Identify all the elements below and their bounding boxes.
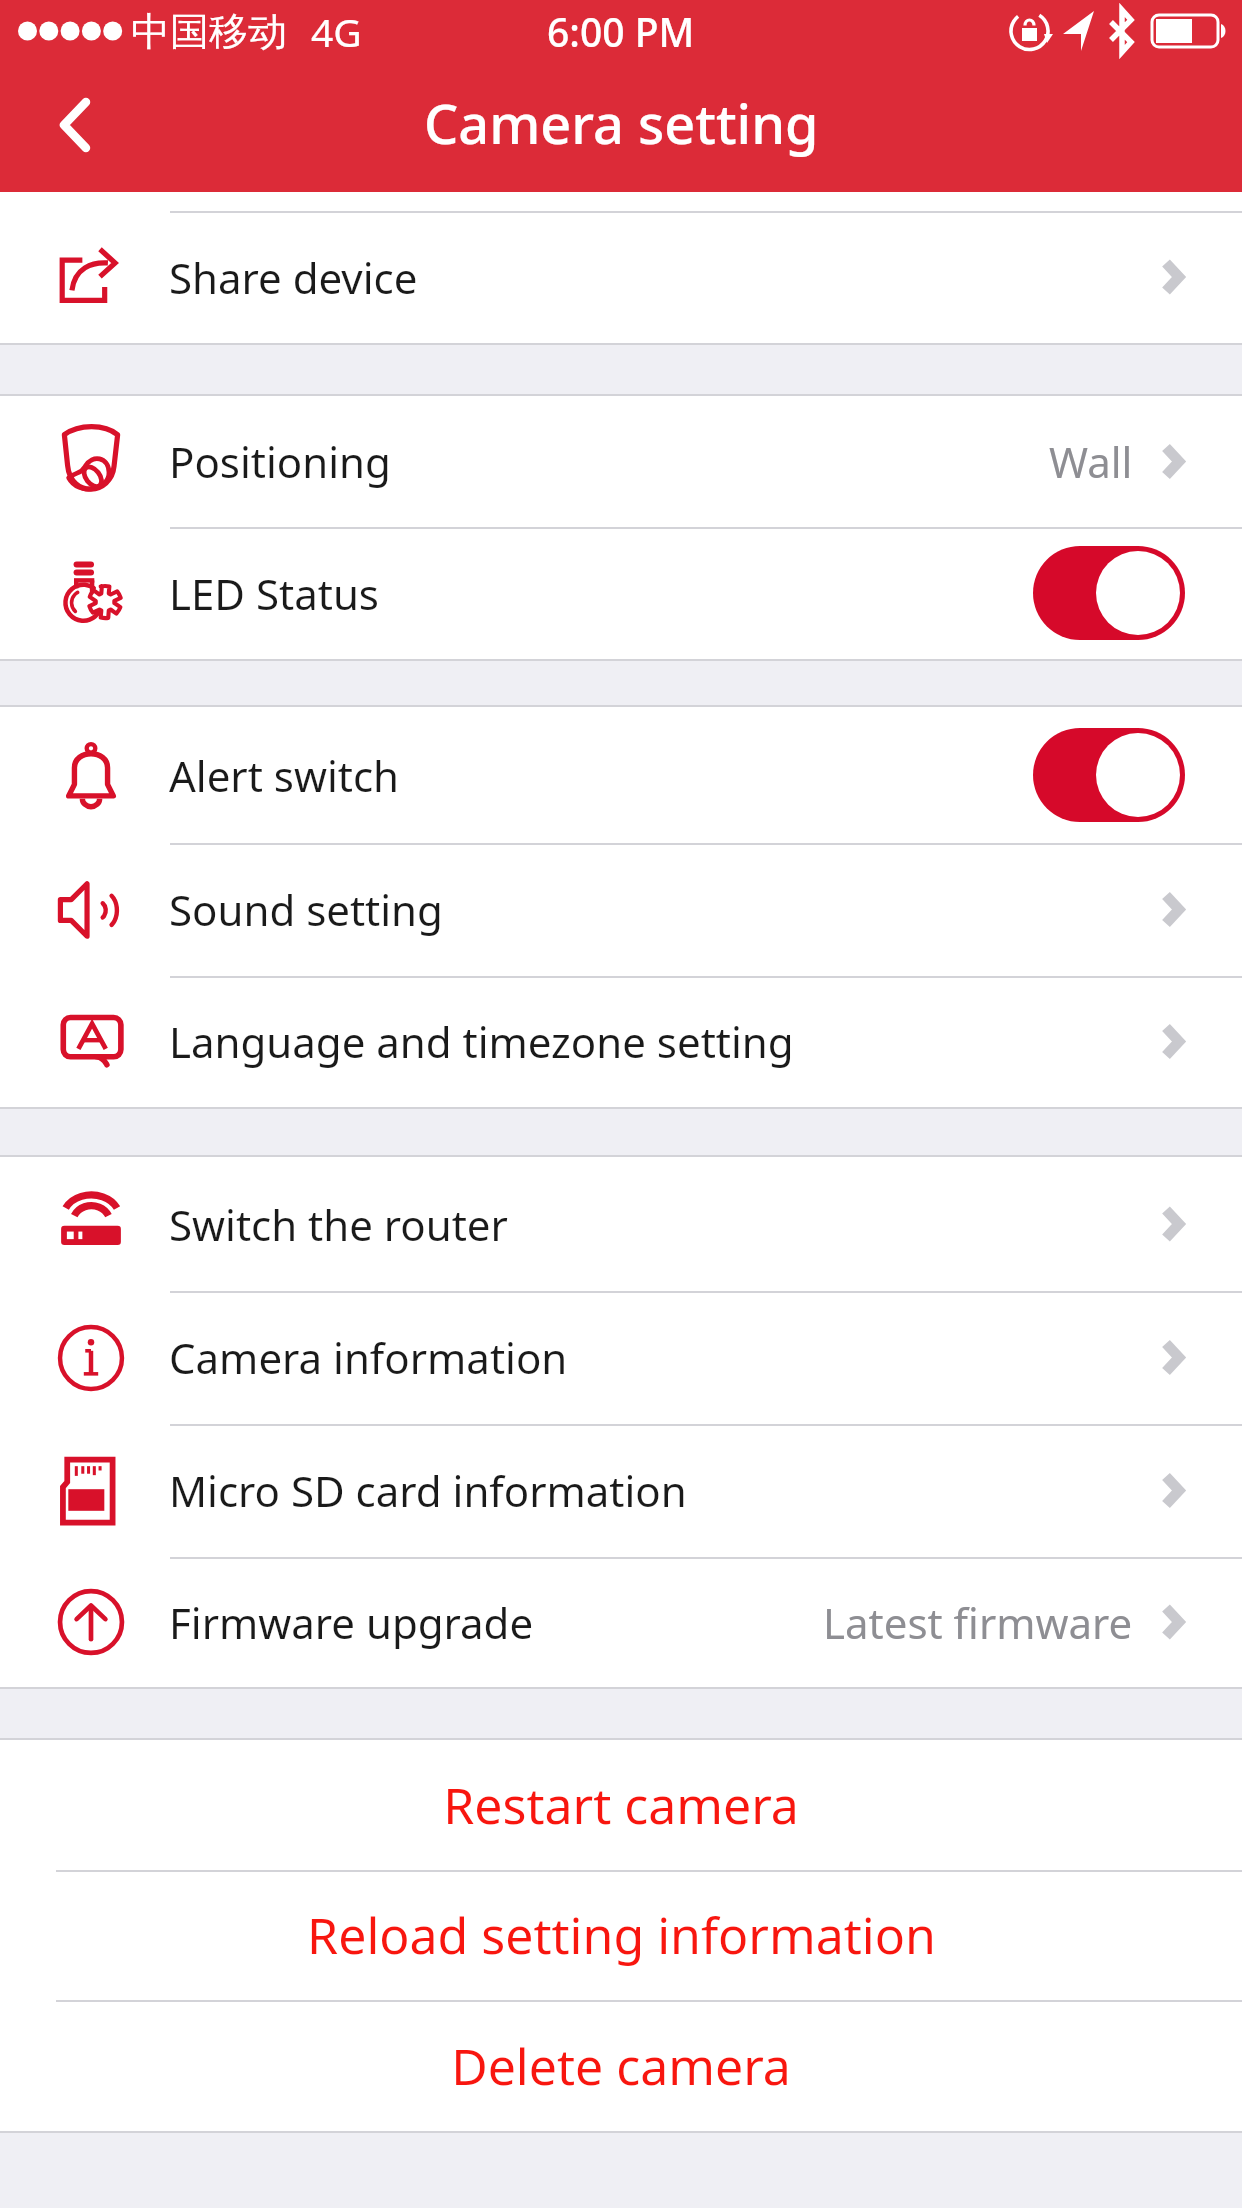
staticText: Language and timezone setting — [169, 1013, 794, 1070]
staticText: Sound setting — [169, 881, 443, 938]
staticText: LED Status — [169, 565, 379, 622]
button[interactable]: Positioning — [0, 396, 1242, 527]
staticText: Delete camera — [451, 2032, 791, 2100]
button[interactable]: Camera information — [0, 1291, 1242, 1424]
staticText: Latest firmware — [823, 1594, 1133, 1651]
staticText: 中国移动 — [131, 7, 287, 56]
button[interactable]: LED Status — [0, 527, 1242, 659]
staticText: Alert switch — [169, 747, 400, 804]
button[interactable]: Back — [0, 62, 150, 192]
staticText: 6:00 PM — [547, 5, 695, 58]
button[interactable]: Reload setting information — [0, 1870, 1242, 2000]
staticText: Restart camera — [443, 1771, 799, 1839]
staticText: Camera information — [169, 1329, 568, 1386]
staticText: Positioning — [169, 433, 391, 490]
button[interactable]: Firmware upgrade — [0, 1557, 1242, 1687]
staticText: Switch the router — [169, 1196, 508, 1253]
staticText: 4G — [311, 5, 362, 58]
staticText: Firmware upgrade — [169, 1594, 534, 1651]
button[interactable]: Sound setting — [0, 843, 1242, 976]
button[interactable]: Micro SD card information — [0, 1424, 1242, 1557]
button[interactable]: Restart camera — [0, 1740, 1242, 1870]
button[interactable] — [1033, 546, 1185, 640]
staticText: Camera setting — [424, 86, 819, 160]
staticText: Reload setting information — [307, 1901, 936, 1969]
staticText: Share device — [169, 249, 418, 306]
button[interactable]: Alert switch — [0, 707, 1242, 843]
staticText: Wall — [1049, 433, 1133, 490]
staticText: Micro SD card information — [169, 1462, 687, 1519]
button[interactable]: Language and timezone setting — [0, 976, 1242, 1107]
button[interactable]: Switch the router — [0, 1157, 1242, 1291]
button[interactable]: Share device — [0, 211, 1242, 343]
button[interactable]: Delete camera — [0, 2000, 1242, 2131]
button[interactable] — [1033, 728, 1185, 822]
